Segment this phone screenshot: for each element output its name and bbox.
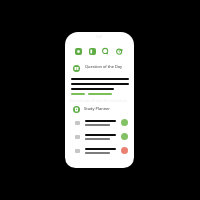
staticText: 9:41: [96, 35, 103, 39]
staticText: Question of the Day: [85, 64, 123, 69]
button[interactable]: Notes: [89, 48, 96, 55]
staticText: Chat with your AI tutor for instant help: [69, 99, 127, 103]
button[interactable]: Progress: [116, 48, 123, 55]
button[interactable]: [65, 116, 134, 130]
button[interactable]: Planner: [73, 106, 80, 113]
button[interactable]: Ask a question: [102, 48, 109, 55]
button[interactable]: [65, 130, 134, 144]
button[interactable]: Question: [73, 65, 80, 72]
button[interactable]: Lessons: [75, 48, 82, 55]
button[interactable]: [65, 144, 134, 158]
staticText: Study Planner: [84, 106, 110, 111]
